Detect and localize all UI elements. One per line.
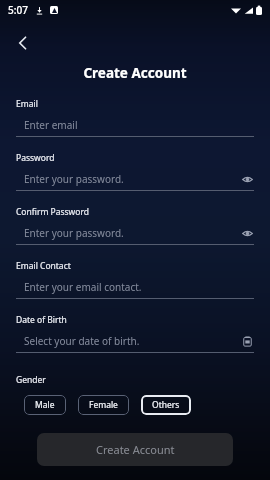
button[interactable]: Female bbox=[78, 395, 129, 415]
staticText: Male bbox=[35, 399, 55, 411]
staticText: 5:07 bbox=[8, 3, 28, 17]
button[interactable]: Show password bbox=[240, 226, 254, 240]
button[interactable]: Back bbox=[10, 30, 36, 56]
staticText: Enter your email contact. bbox=[24, 280, 254, 294]
staticText: Enter your password. bbox=[24, 172, 240, 186]
staticText: Gender bbox=[16, 374, 46, 386]
button[interactable]: Email Contact bbox=[16, 260, 254, 314]
button[interactable]: Show password bbox=[240, 172, 254, 186]
staticText: Create Account bbox=[96, 442, 175, 457]
staticText: Enter email bbox=[24, 118, 254, 132]
staticText: Others bbox=[152, 399, 180, 411]
button[interactable]: Male bbox=[24, 395, 66, 415]
staticText: Date of Birth bbox=[16, 314, 67, 326]
staticText: Email bbox=[16, 98, 38, 110]
staticText: Female bbox=[89, 399, 118, 411]
staticText: Select your date of birth. bbox=[24, 334, 240, 348]
staticText: Password bbox=[16, 152, 55, 164]
button[interactable]: Create Account bbox=[37, 433, 233, 466]
staticText: Email Contact bbox=[16, 260, 71, 272]
button[interactable]: Email bbox=[16, 98, 254, 152]
staticText: Confirm Password bbox=[16, 206, 89, 218]
button[interactable]: Pick date bbox=[240, 334, 254, 348]
button[interactable]: Password bbox=[16, 152, 254, 206]
staticText: Create Account bbox=[83, 64, 187, 82]
button[interactable]: Date of Birth bbox=[16, 314, 254, 368]
button[interactable]: Others bbox=[141, 395, 191, 415]
button[interactable]: Confirm Password bbox=[16, 206, 254, 260]
staticText: Enter your password. bbox=[24, 226, 240, 240]
